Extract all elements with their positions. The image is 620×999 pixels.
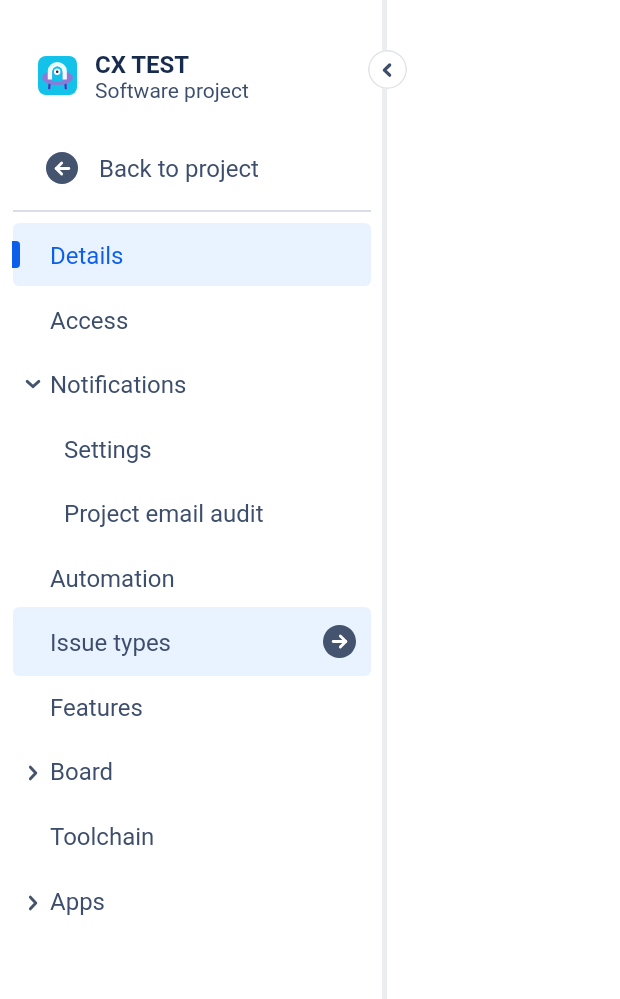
staticText: Software project: [95, 79, 249, 104]
button[interactable]: Features: [13, 675, 371, 738]
staticText: Board: [50, 758, 114, 786]
button[interactable]: Issue types: [13, 607, 371, 676]
staticText: CX TEST: [95, 51, 190, 79]
staticText: Toolchain: [50, 823, 155, 851]
button[interactable]: Apps: [13, 869, 371, 932]
staticText: Notifications: [50, 371, 187, 399]
button[interactable]: Collapse sidebar: [368, 50, 407, 89]
button[interactable]: Toolchain: [13, 804, 371, 867]
button[interactable]: Automation: [13, 546, 371, 609]
button[interactable]: Project email audit: [13, 481, 371, 544]
staticText: Issue types: [50, 629, 172, 657]
staticText: Settings: [64, 436, 152, 464]
button[interactable]: CX TEST: [38, 48, 368, 108]
button[interactable]: Details: [13, 223, 371, 286]
staticText: Access: [50, 307, 129, 335]
staticText: Back to project: [99, 155, 259, 183]
button[interactable]: Notifications: [13, 352, 371, 415]
staticText: Automation: [50, 565, 175, 593]
staticText: Project email audit: [64, 500, 264, 528]
button[interactable]: Access: [13, 288, 371, 351]
button[interactable]: Settings: [13, 417, 371, 480]
button[interactable]: Open issue types: [323, 625, 356, 658]
button[interactable]: Board: [13, 739, 371, 802]
staticText: Details: [50, 242, 124, 270]
staticText: Apps: [50, 888, 105, 916]
button[interactable]: Back to project: [0, 141, 620, 194]
staticText: Features: [50, 694, 143, 722]
